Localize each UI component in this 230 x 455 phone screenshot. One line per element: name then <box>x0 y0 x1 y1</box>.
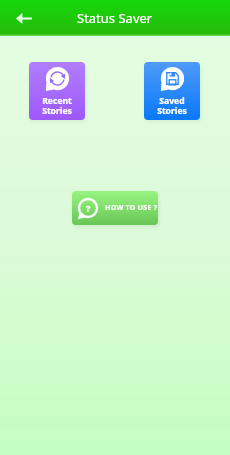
button[interactable]: ? <box>72 191 158 225</box>
button[interactable]: Back <box>13 4 35 32</box>
button[interactable]: Saved <box>144 62 200 120</box>
button[interactable]: Recent <box>29 62 85 120</box>
staticText: Stories <box>157 105 187 117</box>
staticText: ? <box>86 202 91 214</box>
staticText: HOW TO USE ? <box>105 203 158 213</box>
staticText: Status Saver <box>77 9 153 27</box>
staticText: Stories <box>42 105 72 117</box>
staticText: Saved <box>159 95 185 107</box>
staticText: Recent <box>42 95 72 107</box>
